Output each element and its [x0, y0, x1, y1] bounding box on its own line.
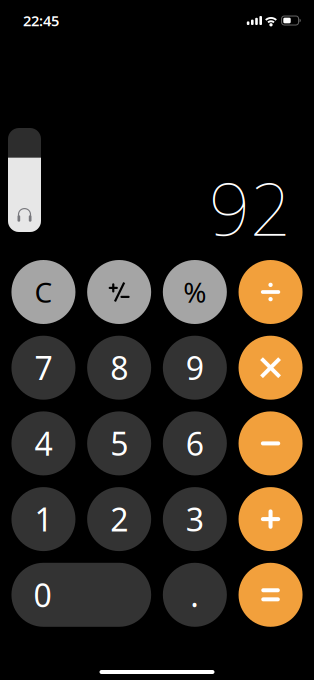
- button[interactable]: 9: [163, 336, 227, 400]
- staticText: 0: [33, 574, 51, 616]
- staticText: 8: [110, 346, 128, 389]
- staticText: 1: [34, 498, 52, 540]
- button[interactable]: Plus minus: [87, 260, 151, 324]
- staticText: 4: [34, 422, 52, 465]
- button[interactable]: 6: [163, 411, 227, 475]
- button[interactable]: 3: [163, 487, 227, 551]
- button[interactable]: 5: [87, 411, 151, 475]
- staticText: 9: [186, 346, 204, 389]
- button[interactable]: Add: [239, 487, 303, 551]
- button[interactable]: %: [163, 260, 227, 324]
- staticText: .: [190, 574, 199, 616]
- staticText: 6: [186, 422, 204, 465]
- staticText: %: [183, 273, 206, 311]
- button[interactable]: Divide: [239, 260, 303, 324]
- button[interactable]: 8: [87, 336, 151, 400]
- button[interactable]: 1: [11, 487, 75, 551]
- staticText: 92: [209, 160, 291, 256]
- button[interactable]: Equals: [238, 563, 302, 627]
- staticText: 3: [186, 498, 204, 540]
- button[interactable]: Multiply: [239, 336, 303, 400]
- button[interactable]: C: [11, 260, 75, 324]
- button[interactable]: 2: [87, 487, 151, 551]
- staticText: 2: [110, 498, 128, 540]
- button[interactable]: 7: [11, 336, 75, 400]
- button[interactable]: 0: [11, 563, 151, 627]
- staticText: C: [34, 273, 52, 311]
- button[interactable]: .: [163, 563, 227, 627]
- staticText: 7: [34, 346, 52, 389]
- staticText: 5: [110, 422, 128, 465]
- button[interactable]: 4: [11, 411, 75, 475]
- staticText: 22:45: [23, 11, 59, 30]
- button[interactable]: Subtract: [239, 411, 303, 475]
